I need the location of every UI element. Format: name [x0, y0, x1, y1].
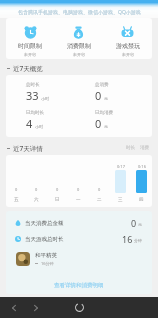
staticText: 未开启 [24, 52, 36, 57]
staticText: 小时 [41, 96, 49, 101]
button[interactable]: Refresh [73, 301, 86, 314]
staticText: 近7天概览 [13, 64, 43, 73]
button[interactable]: 消费限制 [54, 18, 103, 59]
staticText: 总消费 [95, 82, 109, 88]
staticText: 包含腾讯手机游戏、电脑游戏、微信小游戏、QQ小游戏 [18, 9, 141, 16]
staticText: 当天消费总金额 [25, 220, 64, 227]
staticText: 游戏禁玩 [116, 42, 140, 50]
staticText: 日均时长 [26, 110, 44, 116]
staticText: 近7天详情 [13, 144, 43, 153]
staticText: 消费 [140, 145, 149, 151]
staticText: 二 [97, 197, 102, 203]
staticText: 分钟 [134, 238, 142, 243]
staticText: 0:17 [117, 164, 125, 169]
button[interactable]: 当天游戏总时长 [6, 231, 152, 247]
staticText: 33 [26, 88, 39, 103]
staticText: 一 [76, 197, 81, 203]
staticText: 消费限制 [67, 42, 91, 50]
staticText: 0 [35, 187, 38, 192]
staticText: 元 [138, 222, 142, 227]
staticText: 0 [77, 187, 80, 192]
staticText: 元 [104, 96, 108, 101]
staticText: 总时长 [26, 82, 40, 88]
staticText: 0 [98, 187, 101, 192]
button[interactable]: 当天消费总金额 [6, 215, 152, 231]
button[interactable]: 游戏禁玩 [103, 18, 152, 59]
staticText: 0 [56, 187, 59, 192]
staticText: 0:16 [138, 164, 146, 169]
staticText: 日 [55, 197, 60, 203]
staticText: 四 [139, 197, 144, 203]
button[interactable]: Back [8, 302, 20, 314]
staticText: 元 [104, 124, 108, 129]
staticText: 当天游戏总时长 [25, 236, 64, 243]
button[interactable]: 时间限制 [6, 18, 54, 59]
button[interactable]: 查看详情和消费明细 [48, 280, 110, 291]
staticText: 0 [95, 88, 102, 103]
staticText: 0 [95, 116, 102, 131]
staticText: 查看详情和消费明细 [54, 282, 104, 289]
staticText: 小时 [35, 124, 43, 129]
staticText: 4 [26, 116, 33, 131]
button[interactable]: 和平精英 [6, 252, 152, 266]
staticText: 未开启 [73, 52, 85, 57]
button[interactable]: Forward [30, 302, 42, 314]
staticText: 0 [131, 217, 137, 229]
staticText: 日均消费 [95, 110, 113, 116]
staticText: 时间限制 [18, 42, 42, 50]
staticText: 16分钟 [41, 261, 54, 266]
staticText: 六 [34, 197, 39, 203]
staticText: 时长 [126, 145, 135, 151]
staticText: 和平精英 [35, 252, 57, 259]
staticText: 三 [118, 197, 123, 203]
staticText: 五 [14, 197, 19, 203]
staticText: 未开启 [122, 52, 134, 57]
staticText: 16 [122, 233, 133, 245]
staticText: 0 [15, 187, 18, 192]
